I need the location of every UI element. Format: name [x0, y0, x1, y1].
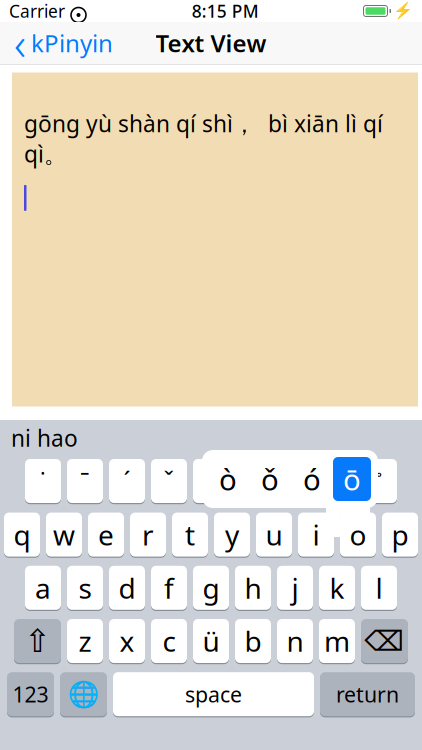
button[interactable]: ˚ — [361, 458, 397, 504]
staticText: space — [185, 680, 242, 708]
staticText: h — [244, 569, 261, 606]
staticText: q — [13, 516, 30, 553]
staticText: x — [119, 622, 134, 660]
button[interactable]: y — [214, 512, 250, 557]
staticText: d — [118, 569, 135, 606]
staticText: y — [225, 516, 239, 553]
button[interactable]: o — [340, 512, 376, 557]
button[interactable] — [277, 458, 313, 504]
button[interactable]: f — [151, 565, 187, 610]
button[interactable]: Next keyboard — [60, 672, 107, 717]
staticText: w — [53, 516, 75, 553]
button[interactable]: b — [235, 618, 271, 664]
staticText: ō — [343, 459, 361, 498]
button[interactable]: return — [320, 672, 415, 717]
button[interactable]: s — [67, 565, 103, 610]
staticText: ˉ — [80, 464, 90, 498]
button[interactable] — [319, 458, 355, 504]
staticText: 🌐 — [67, 680, 99, 709]
button[interactable]: Delete — [361, 618, 408, 664]
button[interactable]: 123 — [7, 672, 54, 717]
button[interactable]: w — [46, 512, 82, 557]
staticText: m — [324, 622, 350, 660]
staticText: ó — [303, 459, 321, 498]
staticText: Text View — [155, 27, 266, 59]
button[interactable]: c — [151, 618, 187, 664]
button[interactable] — [193, 458, 229, 504]
button[interactable]: l — [361, 565, 397, 610]
staticText: b — [244, 622, 261, 660]
button[interactable]: ˉ — [67, 458, 103, 504]
staticText: n — [286, 622, 303, 660]
staticText: ò — [219, 459, 237, 498]
staticText: return — [336, 680, 399, 708]
staticText: e — [98, 516, 114, 553]
staticText: f — [164, 569, 174, 606]
staticText: i — [312, 516, 319, 553]
staticText: u — [265, 516, 282, 553]
staticText: ǒ — [261, 459, 279, 498]
button[interactable]: space — [113, 672, 314, 717]
staticText: z — [78, 622, 91, 660]
button[interactable]: a — [25, 565, 61, 610]
button[interactable]: q — [4, 512, 40, 557]
button[interactable]: ˇ — [151, 458, 187, 504]
button[interactable]: i — [298, 512, 334, 557]
staticText: p — [391, 516, 408, 553]
staticText: t — [185, 516, 195, 553]
staticText: 123 — [12, 680, 48, 708]
button[interactable]: x — [109, 618, 145, 664]
button[interactable]: Shift — [14, 618, 61, 664]
button[interactable]: p — [382, 512, 418, 557]
button[interactable]: h — [235, 565, 271, 610]
staticText: gōng yù shàn qí shì， bì xiān lì qí qì。 — [24, 108, 383, 169]
button[interactable]: r — [130, 512, 166, 557]
staticText: g — [202, 569, 219, 606]
staticText: c — [162, 622, 175, 660]
button[interactable]: ü — [193, 618, 229, 664]
staticText: ü — [202, 622, 219, 660]
button[interactable]: d — [109, 565, 145, 610]
staticText: l — [375, 569, 382, 606]
staticText: 8:15 PM — [192, 0, 259, 22]
button[interactable]: z — [67, 618, 103, 664]
staticText: ni hao — [11, 423, 78, 453]
button[interactable]: ˊ — [109, 458, 145, 504]
staticText: ‹ — [14, 13, 26, 73]
staticText: ⇧ — [24, 623, 51, 659]
button[interactable]: m — [319, 618, 355, 664]
staticText: ˇ — [163, 464, 174, 498]
staticText: kPinyin — [31, 27, 113, 59]
button[interactable]: k — [319, 565, 355, 610]
button[interactable] — [235, 458, 271, 504]
staticText: ˊ — [123, 464, 130, 498]
staticText: o — [349, 516, 366, 553]
button[interactable]: t — [172, 512, 208, 557]
staticText: j — [291, 569, 298, 606]
staticText: ˚ — [376, 468, 382, 494]
button[interactable]: ‹ — [0, 9, 113, 77]
staticText: a — [35, 569, 51, 606]
button[interactable]: g — [193, 565, 229, 610]
staticText: s — [78, 569, 91, 606]
button[interactable]: e — [88, 512, 124, 557]
button[interactable]: n — [277, 618, 313, 664]
staticText: k — [329, 569, 344, 606]
staticText: r — [142, 516, 154, 553]
button[interactable]: ˙ — [25, 458, 61, 504]
staticText: ⌫ — [364, 625, 404, 657]
button[interactable]: j — [277, 565, 313, 610]
staticText: Carrier — [9, 0, 65, 22]
button[interactable]: u — [256, 512, 292, 557]
staticText: ⚡ — [393, 2, 413, 20]
staticText: ˙ — [40, 464, 45, 498]
